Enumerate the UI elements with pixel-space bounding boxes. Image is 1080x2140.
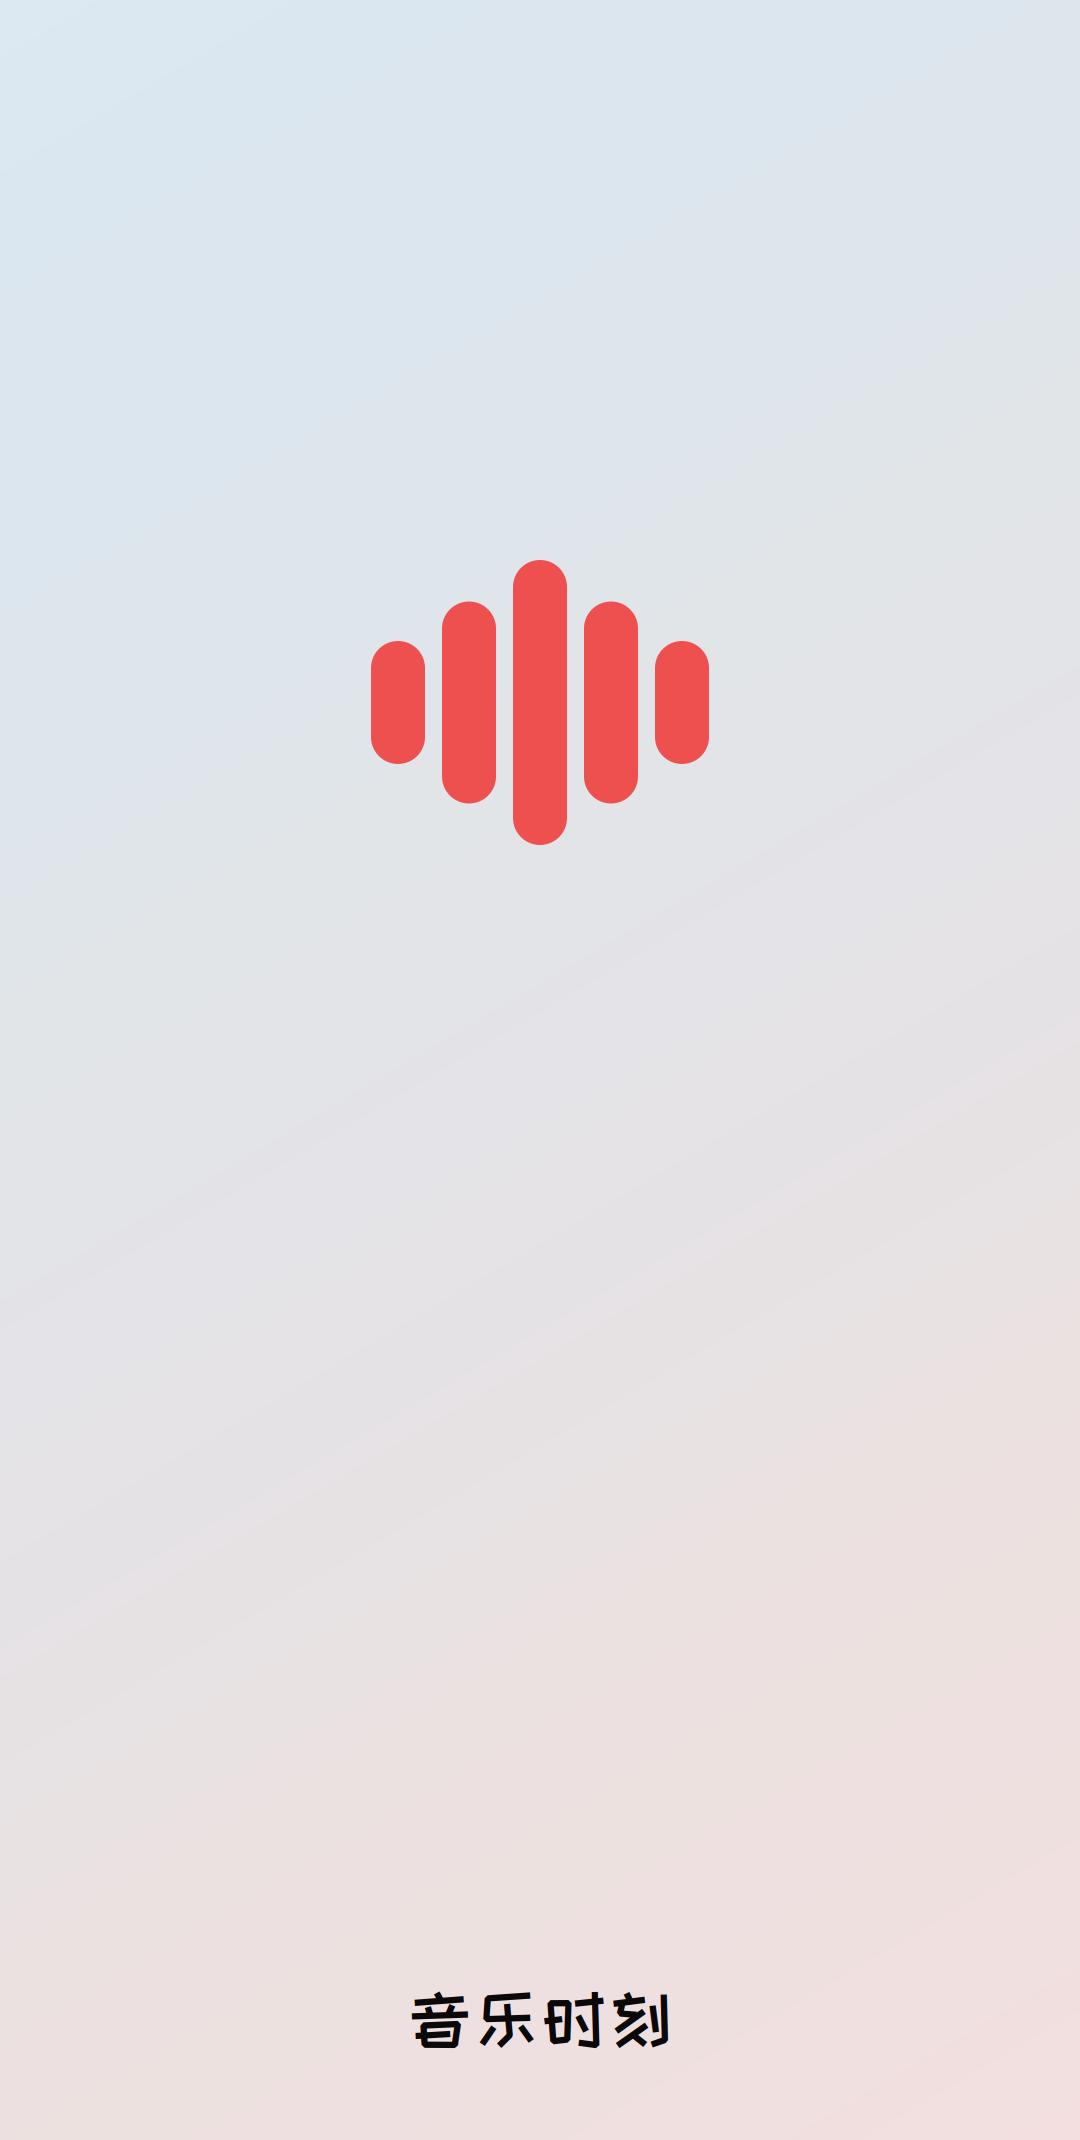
staticText: 音乐时刻 <box>409 1985 671 2052</box>
